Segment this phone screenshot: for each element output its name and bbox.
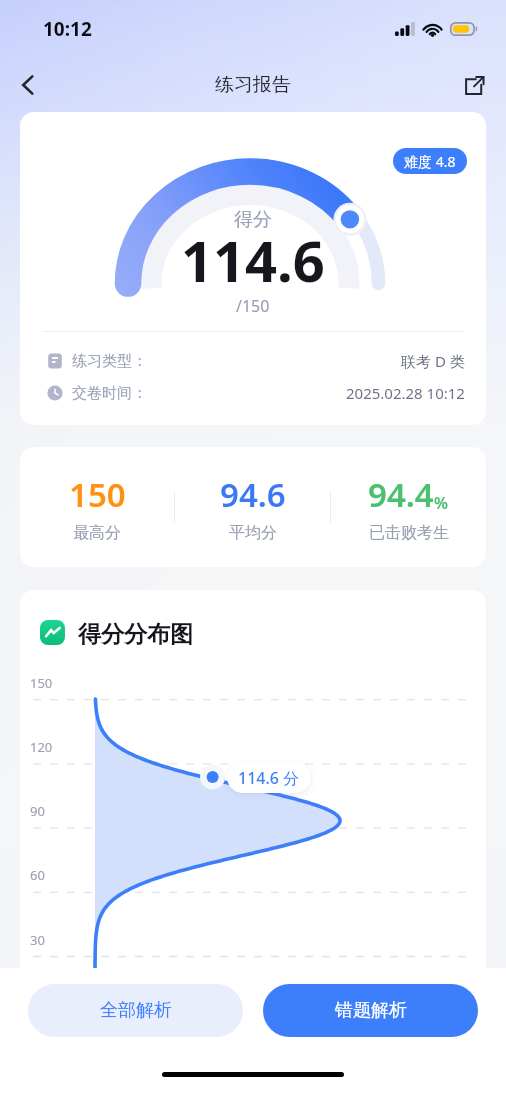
staticText: 94.4 [368,472,434,517]
staticText: 2025.02.28 10:12 [346,383,465,403]
staticText: 150 [69,472,126,517]
staticText: 得分分布图 [78,620,193,645]
staticText: 120 [30,738,53,756]
staticText: 已击败考生 [369,523,449,543]
staticText: % [434,492,449,514]
staticText: 全部解析 [100,999,172,1022]
staticText: 最高分 [73,523,121,543]
staticText: 交卷时间： [72,384,147,403]
staticText: 10:12 [43,16,92,42]
staticText: 114.6 分 [238,767,300,789]
staticText: 90 [30,802,45,820]
button[interactable]: 全部解析 [28,984,243,1037]
staticText: 得分 [234,208,272,232]
button[interactable]: Back [6,63,50,107]
staticText: 平均分 [229,523,277,543]
staticText: 联考 D 类 [401,351,465,371]
staticText: 30 [30,931,45,949]
staticText: /150 [236,295,270,317]
staticText: 难度 4.8 [404,152,456,171]
staticText: 60 [30,866,45,884]
staticText: 94.6 [220,472,286,517]
button[interactable]: 错题解析 [263,984,478,1037]
staticText: 114.6 [181,222,325,298]
button[interactable]: 难度 4.8 [393,148,467,174]
button[interactable]: Share [452,63,496,107]
staticText: 练习报告 [215,73,291,97]
staticText: 150 [30,674,53,692]
staticText: 错题解析 [335,999,407,1022]
staticText: 练习类型： [72,352,147,371]
